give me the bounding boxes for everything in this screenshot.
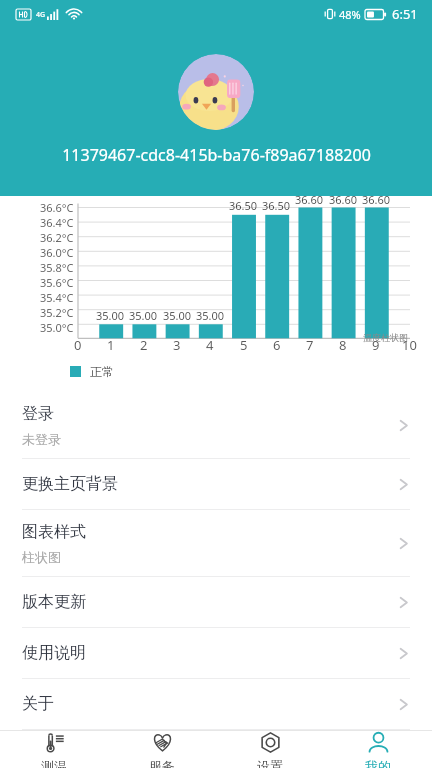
staticText: 测温 [41,758,67,768]
staticText: 4 [206,336,214,354]
staticText: 设置 [257,758,283,768]
staticText: 我的 [365,758,391,768]
staticText: 36.50 [229,198,258,213]
staticText: 35.00 [196,308,225,323]
staticText: 9 [372,336,380,354]
staticText: 5 [240,336,248,354]
staticText: 2 [140,336,148,354]
staticText: 35.00 [163,308,192,323]
staticText: 6 [273,336,281,354]
button[interactable]: Avatar [178,54,254,130]
staticText: 11379467-cdc8-415b-ba76-f89a67188200 [62,144,371,166]
button[interactable]: 设置 [216,731,324,768]
staticText: 版本更新 [22,592,86,612]
staticText: 35.0°C [40,320,74,335]
staticText: 正常 [90,364,114,379]
staticText: 柱状图 [22,549,61,565]
staticText: 36.60 [362,192,391,207]
staticText: 服务 [149,758,175,768]
button[interactable]: 我的 [324,731,432,768]
button[interactable]: 关于 [0,679,432,729]
staticText: 48% [339,7,361,22]
staticText: 6:51 [392,5,418,23]
button[interactable]: 服务 [108,731,216,768]
staticText: 7 [306,336,314,354]
staticText: 4G [36,10,46,20]
staticText: 温度柱状图 [363,332,408,343]
staticText: 登录 [22,404,54,424]
staticText: 36.6°C [40,200,74,215]
staticText: 更换主页背景 [22,474,118,494]
other: 设置 [259,731,282,754]
staticText: 36.60 [329,192,358,207]
staticText: 未登录 [22,431,61,447]
staticText: 1 [107,336,115,354]
staticText: 0 [74,336,82,354]
button[interactable]: 使用说明 [0,628,432,678]
staticText: 35.00 [96,308,125,323]
staticText: 35.6°C [40,275,74,290]
staticText: 36.2°C [40,230,74,245]
button[interactable]: 登录 [0,392,432,458]
staticText: 8 [339,336,347,354]
other: 服务 [151,731,174,754]
staticText: 35.00 [129,308,158,323]
staticText: 3 [173,336,181,354]
staticText: 35.4°C [40,290,74,305]
staticText: 35.2°C [40,305,74,320]
staticText: 关于 [22,694,54,714]
staticText: 10 [402,336,417,354]
staticText: 图表样式 [22,522,86,542]
button[interactable]: 测温 [0,731,108,768]
staticText: 36.60 [295,192,324,207]
staticText: 36.50 [262,198,291,213]
staticText: 35.8°C [40,260,74,275]
other: 我的 [367,731,390,754]
other: 测温 [43,731,66,754]
staticText: 使用说明 [22,643,86,663]
staticText: 36.4°C [40,215,74,230]
button[interactable]: 版本更新 [0,577,432,627]
staticText: 36.0°C [40,245,74,260]
button[interactable]: 更换主页背景 [0,459,432,509]
button[interactable]: 图表样式 [0,510,432,576]
